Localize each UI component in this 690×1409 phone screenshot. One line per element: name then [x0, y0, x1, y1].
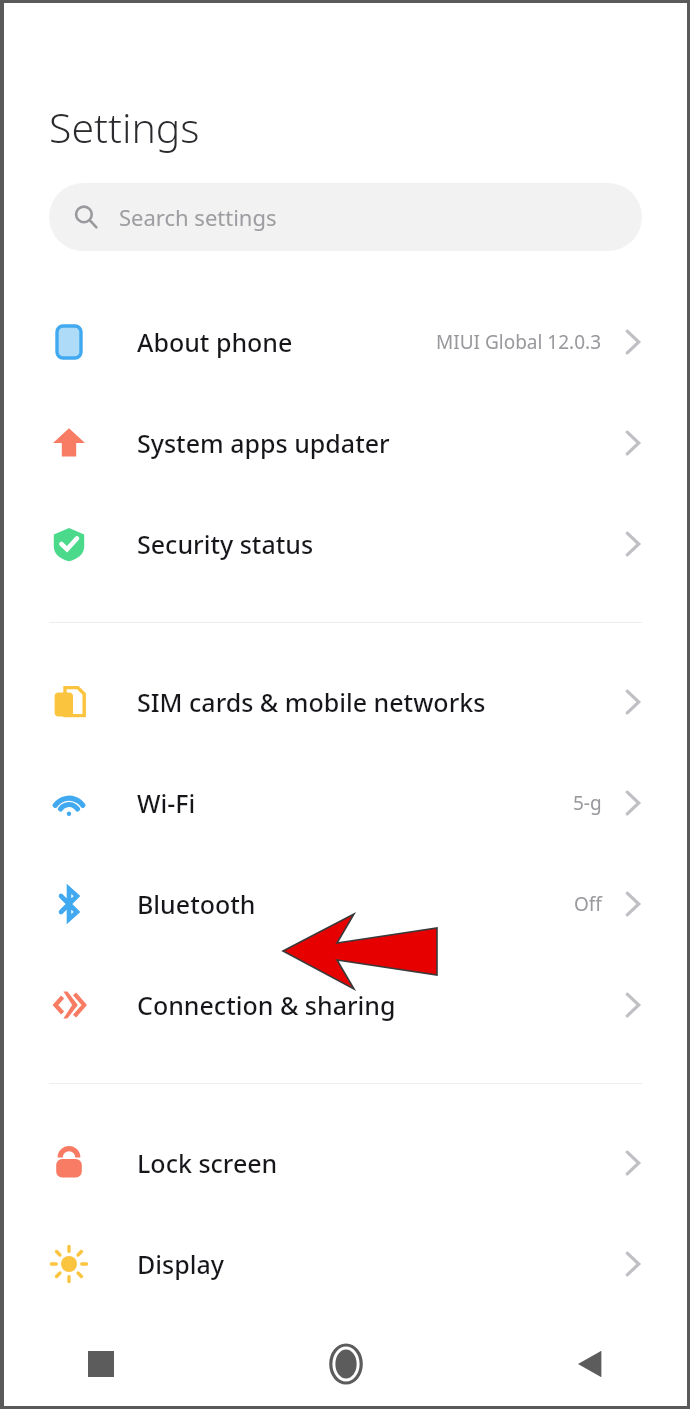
button[interactable]: Connection & sharing [4, 954, 687, 1055]
staticText: Security status [137, 527, 314, 561]
button[interactable]: Lock screen [4, 1112, 687, 1213]
button[interactable]: Bluetooth [4, 853, 687, 954]
staticText: 5-g [573, 790, 602, 816]
button[interactable]: Display [4, 1213, 687, 1314]
button[interactable]: System apps updater [4, 392, 687, 493]
button[interactable]: Search settings [49, 183, 642, 251]
button[interactable]: Back [553, 1327, 627, 1401]
button[interactable]: Home [309, 1327, 383, 1401]
button[interactable]: About phone [4, 291, 687, 392]
staticText: Display [137, 1247, 224, 1281]
staticText: Off [574, 891, 602, 917]
staticText: Connection & sharing [137, 988, 396, 1022]
button[interactable]: Wi-Fi [4, 752, 687, 853]
staticText: Wi-Fi [137, 786, 196, 820]
staticText: Search settings [119, 202, 277, 232]
staticText: Settings [49, 99, 200, 155]
staticText: Lock screen [137, 1146, 278, 1180]
button[interactable]: SIM cards & mobile networks [4, 651, 687, 752]
staticText: Bluetooth [137, 887, 256, 921]
staticText: About phone [137, 325, 293, 359]
staticText: System apps updater [137, 426, 390, 460]
button[interactable]: Security status [4, 493, 687, 594]
staticText: MIUI Global 12.0.3 [436, 329, 602, 355]
button[interactable]: Recents [64, 1327, 138, 1401]
staticText: SIM cards & mobile networks [137, 685, 486, 719]
